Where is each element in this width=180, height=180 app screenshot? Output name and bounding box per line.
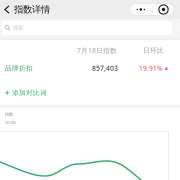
- staticText: 日环比: [143, 46, 164, 54]
- staticText: 指数: [5, 112, 13, 117]
- staticText: 搜索: [13, 25, 23, 31]
- staticText: 指数详情: [14, 4, 50, 15]
- button[interactable]: Back: [0, 0, 14, 19]
- button[interactable]: 搜索: [0, 19, 180, 38]
- staticText: 7月18日指数: [77, 46, 117, 55]
- staticText: 添加对比词: [12, 89, 47, 97]
- staticText: 20.00k: [5, 120, 16, 125]
- button[interactable]: 添加对比词: [0, 73, 180, 105]
- staticText: 19.91%: [139, 64, 163, 73]
- button[interactable]: More options: [130, 3, 174, 16]
- staticText: 品牌折扣: [5, 64, 33, 72]
- staticText: 857,403: [92, 64, 118, 73]
